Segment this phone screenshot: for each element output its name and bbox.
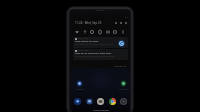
staticText: 11:24 · Wed, Sep 23 <box>75 21 102 25</box>
button[interactable]: Tile 2 <box>90 30 94 34</box>
button[interactable]: Chrome <box>109 98 116 105</box>
button[interactable]: Tile 1 <box>83 30 87 34</box>
staticText: Get options set to sharing Tracks nothin… <box>75 43 114 46</box>
button[interactable]: Gmail · now <box>73 37 128 48</box>
staticText: CLEAR ALL <box>114 64 127 67</box>
staticText: Back up or lost find it days ago? <box>75 52 112 55</box>
button[interactable]: Gmail · now <box>73 49 128 60</box>
staticText: We attend to your Zendesk in a simple he… <box>75 55 115 58</box>
button[interactable]: Camera <box>120 98 127 105</box>
button[interactable]: Tile 5 <box>113 30 117 34</box>
button[interactable]: Tile 3 <box>98 30 102 34</box>
button[interactable]: CLEAR ALL <box>114 64 127 67</box>
button[interactable]: Phone <box>74 98 81 105</box>
staticText: New map is on hand <box>75 40 99 43</box>
button[interactable]: Tile 4 <box>106 30 110 34</box>
staticText: Play Store <box>119 88 129 91</box>
staticText: Gmail · now <box>78 37 89 40</box>
button[interactable]: Settings <box>74 80 85 91</box>
button[interactable]: Messages <box>86 98 93 105</box>
button[interactable]: Tile 6 <box>121 30 125 34</box>
staticText: Settings <box>76 88 84 91</box>
button[interactable]: Play Store <box>118 80 129 91</box>
button[interactable]: Mail <box>97 98 104 105</box>
button[interactable]: Tile 0 <box>75 30 79 34</box>
staticText: Gmail · now <box>78 49 89 52</box>
